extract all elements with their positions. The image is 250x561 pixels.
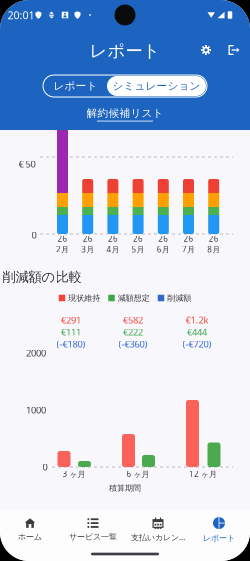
staticText: 26 [183,233,193,244]
staticText: 6 ヶ月 [126,469,149,479]
staticText: 26 [209,233,219,244]
staticText: 26 [158,233,168,244]
staticText: レポート [89,40,160,62]
staticText: 12 ヶ月 [189,469,217,479]
staticText: サービス一覧 [69,532,117,542]
staticText: €444 [187,326,207,338]
staticText: €582 [123,314,143,326]
staticText: €111 [61,326,81,338]
staticText: 0 [42,461,47,473]
staticText: 積算期間 [109,483,141,493]
staticText: 解約候補リスト [86,106,163,120]
staticText: 26 [57,233,67,244]
staticText: € 50 [18,158,35,170]
button[interactable]: 解約候補リスト [86,106,163,121]
staticText: 8月 [207,244,220,255]
staticText: 減額想定 [118,293,150,303]
button[interactable]: レポート [189,517,249,543]
staticText: (-€720) [182,338,211,350]
button[interactable]: シミュレーション [107,76,206,96]
staticText: 2000 [26,347,46,359]
button[interactable]: レポート [44,76,107,96]
staticText: 支払いカレン… [131,532,185,542]
staticText: 5月 [132,244,145,255]
button[interactable]: 支払いカレン… [123,517,193,543]
staticText: 4月 [106,244,119,255]
staticText: 26 [83,233,93,244]
staticText: 削減額 [167,293,191,303]
staticText: 2月 [56,244,69,255]
staticText: €291 [61,314,81,326]
staticText: 0 [31,229,36,241]
staticText: (-€180) [56,338,85,350]
staticText: 20:01 [7,8,34,22]
staticText: 3 ヶ月 [62,469,85,479]
staticText: ホーム [18,532,42,542]
staticText: 現状維持 [68,293,100,303]
staticText: 26 [133,233,143,244]
staticText: レポート [53,79,97,92]
button[interactable]: サービス一覧 [62,517,124,543]
button[interactable]: ホーム [0,517,60,543]
staticText: レポート [203,533,235,543]
staticText: €1.2k [185,314,208,326]
staticText: 1000 [26,404,46,416]
button[interactable]: ログアウト [222,39,245,61]
staticText: 26 [108,233,118,244]
button[interactable]: 設定 [195,39,217,61]
staticText: 7月 [182,244,195,255]
staticText: €222 [123,326,143,338]
staticText: (-€360) [118,338,147,350]
staticText: 6月 [157,244,170,255]
staticText: シミュレーション [112,79,200,92]
staticText: 削減額の比較 [2,269,81,285]
staticText: 3月 [81,244,94,255]
